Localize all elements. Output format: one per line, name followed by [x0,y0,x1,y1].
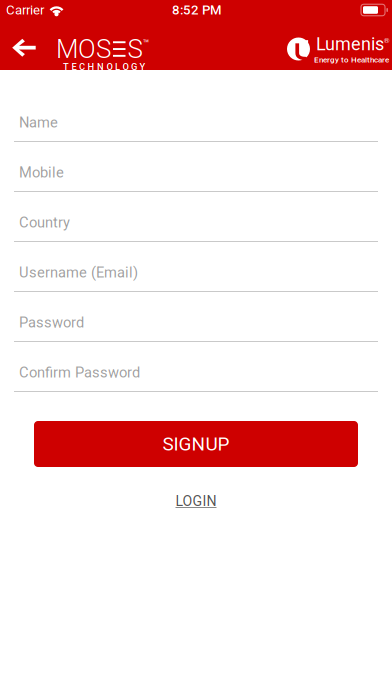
staticText: LOGIN [175,493,216,510]
staticText: S [127,34,142,64]
staticText: ® [384,34,389,45]
staticText: TECHNOLOGY [63,61,145,72]
staticText: Mobile [19,164,64,181]
staticText: Password [19,314,84,331]
staticText: Confirm Password [19,364,140,381]
staticText: Username (Email) [19,264,138,281]
button[interactable]: Back [6,23,42,67]
staticText: MOS [56,34,111,64]
staticText: SIGNUP [162,433,229,455]
staticText: 8:52 PM [172,2,222,18]
button[interactable]: SIGNUP [34,421,358,467]
staticText: Name [19,114,58,131]
staticText: ™ [142,37,149,50]
staticText: Energy to Healthcare [314,55,389,64]
button[interactable]: LOGIN [165,488,226,515]
staticText: Country [19,214,70,231]
staticText: Carrier [6,2,44,18]
staticText: Lumenis [316,33,384,55]
